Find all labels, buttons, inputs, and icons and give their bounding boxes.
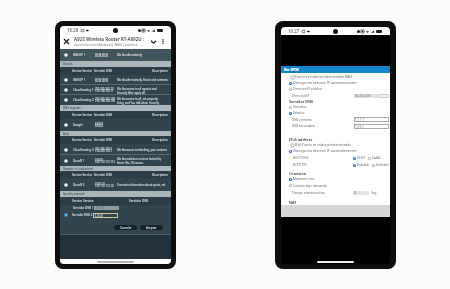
button[interactable]: Deshabilitar	[372, 163, 389, 167]
staticText: Deshabilitar	[376, 163, 389, 167]
staticText: Anti	[63, 132, 69, 136]
button[interactable]: Estatico	[281, 110, 390, 116]
staticText: Service Service	[72, 199, 94, 203]
staticText: Descripcion	[152, 138, 168, 142]
button[interactable]: WAN IP 1	[60, 75, 171, 85]
button[interactable]: Aceptar	[140, 225, 163, 230]
staticText: 9.9.9.10 149.112.112.10	[95, 182, 117, 188]
staticText: Require it is attached	[63, 167, 93, 171]
staticText: 16:26	[67, 27, 79, 33]
button[interactable]: Close	[61, 36, 72, 47]
staticText: 1.0.0.1	[95, 214, 104, 218]
staticText: Cloudhosting 3	[73, 148, 95, 152]
staticText: 0	[354, 191, 356, 195]
staticText: Estatico	[293, 111, 305, 115]
button[interactable]: Mantener viva	[281, 176, 390, 182]
staticText: 1.1.1.1	[355, 118, 364, 122]
staticText: Descripcion	[152, 113, 168, 117]
staticText: asusrouter.com/Advanced_WAN_Content.a	[74, 43, 138, 47]
button[interactable]: Obtenga una direccion IP automaticamente	[281, 80, 390, 86]
staticText: DNS register	[63, 106, 81, 110]
staticText: DNS secundario	[292, 124, 354, 128]
staticText: Cancelar	[120, 226, 132, 230]
button[interactable]: Cancelar	[114, 225, 137, 230]
staticText: Bla bla access to all against and Securi…	[117, 87, 157, 94]
staticText: 1.1.1.1	[96, 206, 105, 210]
staticText: Tiempo maximo activo	[292, 191, 353, 195]
staticText: Quad9 2	[73, 183, 95, 187]
staticText: Cloudhosting 2	[73, 98, 95, 102]
staticText: 255.255.255.5 192.225.100.1	[95, 147, 117, 153]
staticText: Bla bla access to blocking, your content	[117, 148, 167, 152]
button[interactable]: Cloudhosting 1	[60, 85, 171, 95]
button[interactable]: Obtenga una direccion IP automaticamente	[281, 148, 390, 154]
button[interactable]: IPv6 Puerto de enlace predeterminado	[281, 142, 390, 148]
staticText: Bla bla malicious servers hosted by Serv…	[117, 157, 162, 164]
staticText: Servidor DNS	[129, 199, 149, 203]
staticText: Dinamico	[293, 105, 307, 109]
button[interactable]: More options	[158, 37, 167, 46]
button[interactable]: Direccion IP publica	[281, 86, 390, 92]
staticText: 255.255.255.100 192.168.100.105	[95, 97, 117, 103]
staticText: Servidor DNS	[289, 99, 314, 104]
staticText: SLAAC	[372, 156, 382, 160]
staticText: Specify manual	[63, 192, 85, 196]
staticText: xx.xx.xx.xx xx.xx.xx.xx	[95, 52, 117, 58]
staticText: Bla bla access to all, set properly thin…	[117, 97, 160, 104]
staticText: Conexion	[289, 171, 307, 176]
button[interactable]: SLAAC	[368, 156, 382, 160]
staticText: Obtenga una direccion IP automaticamente	[293, 149, 357, 153]
staticText: IPv6 address	[289, 137, 313, 142]
staticText: WAN IP 1	[73, 53, 95, 57]
staticText: 83.49.22.85	[355, 94, 371, 98]
staticText: 255.255.255.10 192.168.100.11	[95, 87, 117, 93]
staticText: Conecta bajo demanda	[293, 184, 327, 188]
staticText: Descripcion	[152, 173, 168, 177]
staticText: Cloudhosting 1	[73, 88, 95, 92]
staticText: Servidor DNS 1	[73, 206, 94, 210]
staticText: Descripcion	[152, 69, 168, 73]
staticText: Direccion IP	[292, 94, 354, 98]
button[interactable]: Dinamico	[281, 104, 390, 110]
staticText: Direccion IP publica	[293, 87, 322, 91]
staticText: Obtenga una direccion IP automaticamente	[293, 81, 357, 85]
button[interactable]: Quad9 2	[60, 178, 171, 191]
staticText: Bla bla alternatively	[117, 53, 142, 57]
staticText: DHCP-IPv6	[293, 156, 353, 160]
staticText: xx.xx.xx.xx xx.xx.xx.xx	[95, 77, 117, 83]
staticText: DNS primario	[292, 118, 354, 122]
button[interactable]: Cloudhosting 3	[60, 144, 171, 155]
staticText: Details	[63, 62, 73, 66]
button[interactable]: Google	[60, 119, 171, 131]
staticText: NAT	[289, 200, 297, 205]
staticText: Servidor DNS	[94, 69, 116, 73]
staticText: Ver IPOE	[284, 67, 300, 72]
staticText: 9.9.9.9 149.112.112.112	[95, 158, 117, 164]
staticText: Servidor DNS 2	[72, 213, 93, 217]
staticText: Puerto de enlace predeterminado WAN	[295, 75, 352, 79]
button[interactable]: WAN IP 1	[60, 49, 171, 61]
staticText: Servidor DNS	[94, 113, 116, 117]
button[interactable]: Puerto de enlace predeterminado WAN	[281, 74, 390, 80]
staticText: ASUS Wireless Router RT-AX92U :	[74, 36, 144, 42]
staticText: Quad9 1	[73, 159, 95, 163]
button[interactable]: DHCP	[353, 156, 366, 160]
button[interactable]: Expand	[148, 37, 158, 47]
staticText: DHCP	[357, 156, 366, 160]
button[interactable]: Cloudhosting 2	[60, 95, 171, 105]
staticText: 16:27	[288, 28, 300, 34]
button[interactable]: Quad9 1	[60, 155, 171, 166]
staticText: DHCP-PD	[293, 163, 353, 167]
staticText: 1.0.0.1	[355, 125, 364, 129]
staticText: Service Service	[72, 69, 94, 73]
staticText: WAN IP 1	[73, 78, 95, 82]
staticText: Servidor DNS	[94, 138, 116, 142]
staticText: Service Service	[72, 138, 94, 142]
staticText: Bla bla alternatively. Route and content…	[117, 78, 168, 82]
staticText: Service Service	[72, 173, 94, 177]
staticText: 8.8.8.8 8.8.4.4	[95, 122, 117, 128]
button[interactable]: Conecta bajo demanda	[281, 182, 390, 189]
staticText: Mantener viva	[293, 177, 314, 181]
button[interactable]: Habilitar	[353, 163, 370, 167]
staticText: Seg	[371, 191, 377, 195]
